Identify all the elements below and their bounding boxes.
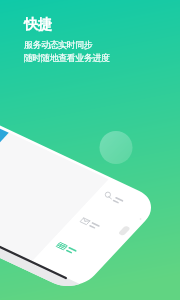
staticText: 服务动态实时同步 [24,39,93,50]
staticText: 随时随地查看业务进度 [24,52,110,63]
staticText: 快捷 [24,16,52,34]
